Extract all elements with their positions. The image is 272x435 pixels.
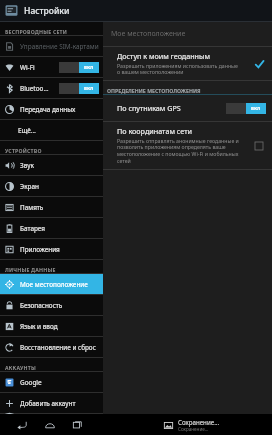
staticText: вкл — [251, 105, 261, 112]
staticText: Мое местоположение — [20, 280, 88, 289]
button[interactable]: Добавить аккаунт — [0, 393, 103, 413]
staticText: По координатам сети — [117, 126, 192, 136]
button[interactable]: Ещё… — [0, 120, 103, 140]
button[interactable]: Wi-Fi — [0, 57, 103, 77]
button[interactable]: вкл — [226, 103, 266, 114]
button[interactable]: Управление SIM-картами — [0, 36, 103, 56]
button[interactable]: Home — [42, 417, 57, 432]
other: Saving image — [163, 420, 173, 430]
button[interactable]: Checked — [252, 57, 266, 71]
staticText: Сохранение… — [178, 418, 220, 426]
staticText: Безопасность — [20, 301, 63, 310]
button[interactable]: Доступ к моим геоданным — [103, 47, 272, 80]
button[interactable]: Язык и ввод — [0, 316, 103, 336]
button[interactable]: Звук — [0, 155, 103, 175]
button[interactable]: Мое местоположение — [0, 274, 103, 294]
staticText: Ещё… — [18, 126, 36, 135]
staticText: ОПРЕДЕЛЕНИЕ МЕСТОПОЛОЖЕНИЯ — [107, 87, 201, 94]
button[interactable]: Saving image — [163, 414, 272, 435]
button[interactable]: Безопасность — [0, 295, 103, 315]
staticText: Мое местоположение — [111, 29, 186, 39]
button[interactable]: Unchecked — [252, 139, 266, 153]
button[interactable]: Настройки — [0, 0, 272, 21]
button[interactable]: Back — [14, 417, 29, 432]
staticText: БЕСПРОВОДНЫЕ СЕТИ — [5, 28, 68, 35]
staticText: Батарея — [20, 224, 45, 233]
button[interactable]: Экран — [0, 176, 103, 196]
staticText: Приложения — [20, 245, 60, 254]
button[interactable]: По спутникам GPS — [103, 95, 272, 121]
staticText: АККАУНТЫ — [5, 364, 36, 371]
button[interactable]: Батарея — [0, 218, 103, 238]
button[interactable]: Приложения — [0, 239, 103, 259]
staticText: вкл — [84, 85, 94, 92]
staticText: Звук — [20, 161, 34, 170]
button[interactable]: По координатам сети — [103, 122, 272, 169]
staticText: вкл — [84, 64, 94, 71]
button[interactable]: Передача данных — [0, 99, 103, 119]
staticText: Экран — [20, 182, 39, 191]
staticText: По спутникам GPS — [117, 103, 181, 113]
staticText: Google — [20, 378, 42, 387]
staticText: УСТРОЙСТВО — [5, 147, 42, 154]
staticText: Память — [20, 203, 44, 212]
staticText: Wi-Fi — [20, 63, 35, 72]
staticText: Сохранение… — [178, 426, 209, 432]
staticText: Разрешить отправлять анонимные геоданные… — [117, 137, 239, 165]
button[interactable]: Память — [0, 197, 103, 217]
button[interactable]: Google — [0, 372, 103, 392]
button[interactable]: Восстановление и сброс — [0, 337, 103, 357]
staticText: ЛИЧНЫЕ ДАННЫЕ — [5, 266, 56, 273]
staticText: Настройки — [24, 5, 70, 17]
button[interactable]: вкл — [59, 83, 99, 94]
staticText: Bluetoo… — [20, 84, 49, 93]
staticText: Восстановление и сброс — [20, 343, 96, 352]
staticText: Язык и ввод — [20, 322, 58, 331]
staticText: Передача данных — [20, 105, 76, 114]
staticText: Разрешить приложениям использовать данны… — [117, 62, 238, 76]
staticText: Доступ к моим геоданным — [117, 51, 211, 61]
staticText: Управление SIM-картами — [20, 42, 99, 51]
button[interactable]: Bluetoo… — [0, 78, 103, 98]
button[interactable]: Recent apps — [70, 417, 85, 432]
staticText: Добавить аккаунт — [20, 399, 76, 408]
button[interactable]: вкл — [59, 62, 99, 73]
